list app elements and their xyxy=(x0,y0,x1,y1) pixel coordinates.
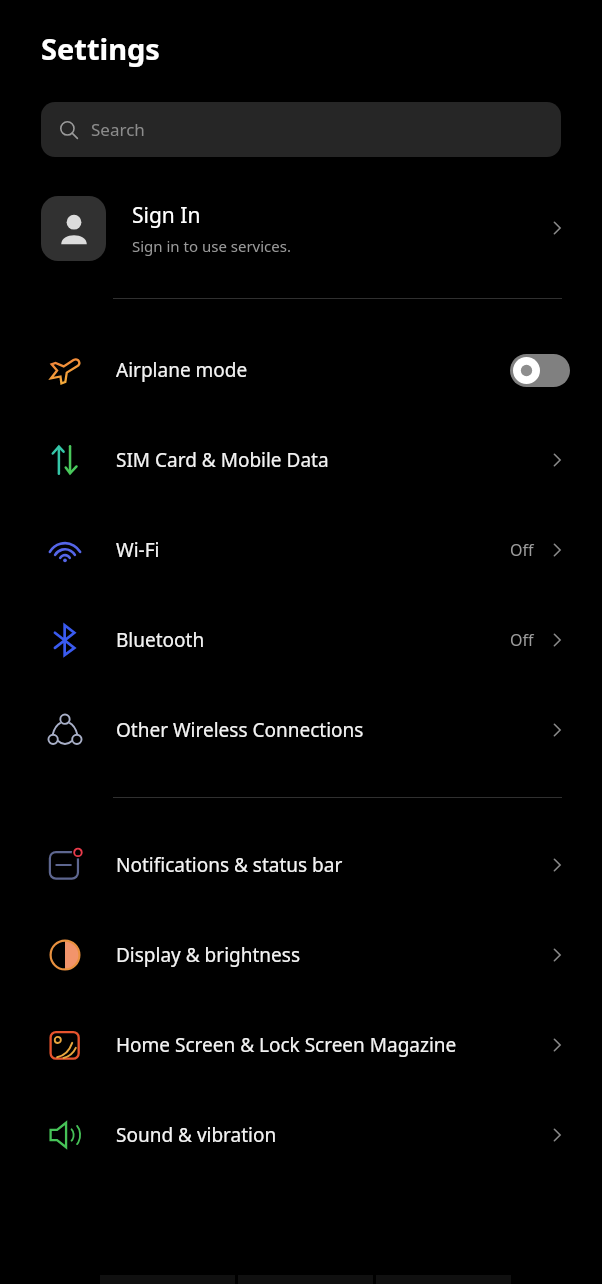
button[interactable]: Display & brightness xyxy=(0,910,602,1000)
button[interactable]: Notifications & status bar xyxy=(0,820,602,910)
staticText: Wi-Fi xyxy=(116,537,502,563)
button[interactable]: Bluetooth xyxy=(0,595,602,685)
staticText: Bluetooth xyxy=(116,627,502,653)
staticText: Airplane mode xyxy=(116,357,502,383)
staticText: Sound & vibration xyxy=(116,1122,540,1148)
staticText: Off xyxy=(510,539,534,561)
staticText: Other Wireless Connections xyxy=(116,717,540,743)
staticText: SIM Card & Mobile Data xyxy=(116,447,540,473)
button[interactable]: Airplane mode xyxy=(0,325,602,415)
button[interactable]: Wi-Fi xyxy=(0,505,602,595)
staticText: Notifications & status bar xyxy=(116,852,540,878)
staticText: Settings xyxy=(41,29,160,68)
button[interactable]: Sign In xyxy=(0,188,602,268)
button[interactable]: SIM Card & Mobile Data xyxy=(0,415,602,505)
staticText: Sign in to use services. xyxy=(132,236,291,256)
button[interactable]: Search xyxy=(41,102,561,157)
staticText: Off xyxy=(510,629,534,651)
button[interactable]: Home Screen & Lock Screen Magazine xyxy=(0,1000,602,1090)
staticText: Display & brightness xyxy=(116,942,540,968)
staticText: Search xyxy=(91,118,145,141)
staticText: Home Screen & Lock Screen Magazine xyxy=(116,1032,540,1058)
staticText: Sign In xyxy=(132,201,201,230)
button[interactable]: Airplane mode toggle xyxy=(510,354,570,387)
button[interactable]: Other Wireless Connections xyxy=(0,685,602,775)
button[interactable]: Sound & vibration xyxy=(0,1090,602,1180)
